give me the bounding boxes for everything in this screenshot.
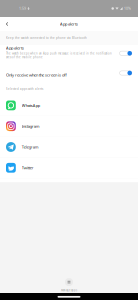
staticText: Manage apps: [61, 288, 77, 292]
button[interactable]: App alerts: [0, 45, 138, 67]
staticText: Telegram: [22, 144, 39, 150]
button[interactable]: Instagram: [0, 116, 138, 137]
staticText: Keep the watch connected to the phone vi…: [6, 36, 87, 40]
staticText: The watch beeps when an App push message…: [6, 52, 112, 59]
staticText: App alerts: [60, 21, 78, 27]
button[interactable]: Telegram: [0, 137, 138, 157]
staticText: Selected apps with alerts: [6, 87, 43, 91]
button[interactable]: Only receive when the screen is off: [0, 67, 138, 83]
staticText: App alerts: [6, 45, 24, 51]
staticText: Only receive when the screen is off: [6, 72, 67, 78]
button[interactable]: Twitter: [0, 157, 138, 178]
button[interactable]: Back: [0, 17, 14, 31]
staticText: WhatsApp: [22, 103, 40, 108]
button[interactable]: Manage apps: [61, 278, 77, 292]
staticText: 1:59: [19, 6, 26, 11]
staticText: Instagram: [22, 123, 40, 129]
button[interactable]: WhatsApp: [0, 95, 138, 116]
staticText: 10%: [124, 6, 131, 11]
staticText: Twitter: [22, 165, 34, 170]
